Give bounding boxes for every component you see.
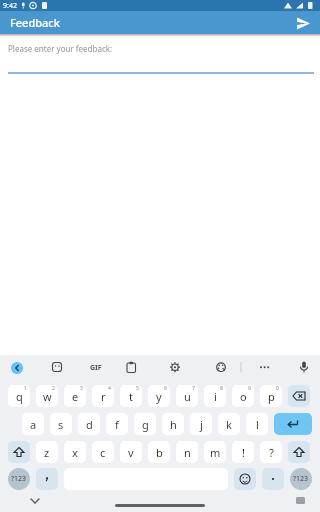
staticText: 4 [108,385,111,392]
button[interactable]: v [120,441,142,463]
button[interactable]: q [8,385,30,407]
staticText: a [30,417,37,432]
staticText: ! [242,445,245,460]
button[interactable]: i [204,385,226,407]
staticText: g [142,417,149,432]
staticText: 6 [164,385,167,392]
staticText: ?123 [11,474,27,484]
staticText: Feedback [10,15,60,30]
staticText: p [268,389,275,404]
button[interactable]: GIF [90,363,102,373]
button[interactable]: a [22,413,44,435]
staticText: c [100,445,106,460]
staticText: n [184,445,191,460]
button[interactable]: t [120,385,142,407]
staticText: 9:42 [3,1,17,11]
staticText: j [200,417,203,432]
staticText: 0 [276,385,279,392]
staticText: t [129,389,133,404]
button[interactable]: m [204,441,226,463]
staticText: y [156,389,162,404]
staticText: v [128,445,134,460]
button[interactable] [288,441,310,463]
button[interactable]: d [78,413,100,435]
button[interactable]: ? [260,441,282,463]
button[interactable]: ! [232,441,254,463]
staticText: 9 [248,385,251,392]
button[interactable]: c [92,441,114,463]
staticText: x [72,445,78,460]
staticText: f [115,417,119,432]
button[interactable]: ?123 [290,468,312,490]
button[interactable] [8,441,30,463]
staticText: r [101,389,106,404]
staticText: 1 [24,385,27,392]
staticText: k [226,417,232,432]
button[interactable] [234,468,256,490]
staticText: e [72,389,79,404]
button[interactable]: k [218,413,240,435]
staticText: b [156,445,163,460]
button[interactable] [295,15,311,31]
button[interactable] [288,385,310,407]
staticText: Please enter your feedback: [8,43,113,54]
button[interactable]: f [106,413,128,435]
button[interactable]: g [134,413,156,435]
staticText: s [58,417,64,432]
button[interactable]: n [176,441,198,463]
button[interactable]: l [246,413,268,435]
staticText: i [214,389,217,404]
button[interactable]: x [64,441,86,463]
staticText: o [240,389,247,404]
staticText: h [170,417,177,432]
button[interactable]: o [232,385,254,407]
button[interactable] [11,362,23,374]
button[interactable] [274,413,312,435]
staticText: GIF [90,363,102,373]
button[interactable] [36,468,58,490]
button[interactable]: z [36,441,58,463]
staticText: 7 [192,385,195,392]
staticText: 2 [52,385,55,392]
staticText: 3 [80,385,83,392]
staticText: z [44,445,50,460]
button[interactable]: s [50,413,72,435]
button[interactable]: u [176,385,198,407]
button[interactable]: y [148,385,170,407]
staticText: ? [269,445,274,460]
staticText: d [86,417,93,432]
button[interactable]: b [148,441,170,463]
staticText: 5 [136,385,139,392]
staticText: ?123 [293,474,309,484]
button[interactable]: h [162,413,184,435]
button[interactable]: j [190,413,212,435]
staticText: w [43,389,52,404]
button[interactable] [262,468,284,490]
staticText: l [256,417,259,432]
staticText: u [184,389,191,404]
button[interactable]: ?123 [8,468,30,490]
button[interactable]: r [92,385,114,407]
button[interactable]: p [260,385,282,407]
staticText: q [16,389,23,404]
staticText: m [210,445,221,460]
button[interactable]: w [36,385,58,407]
button[interactable]: e [64,385,86,407]
staticText: 8 [220,385,223,392]
